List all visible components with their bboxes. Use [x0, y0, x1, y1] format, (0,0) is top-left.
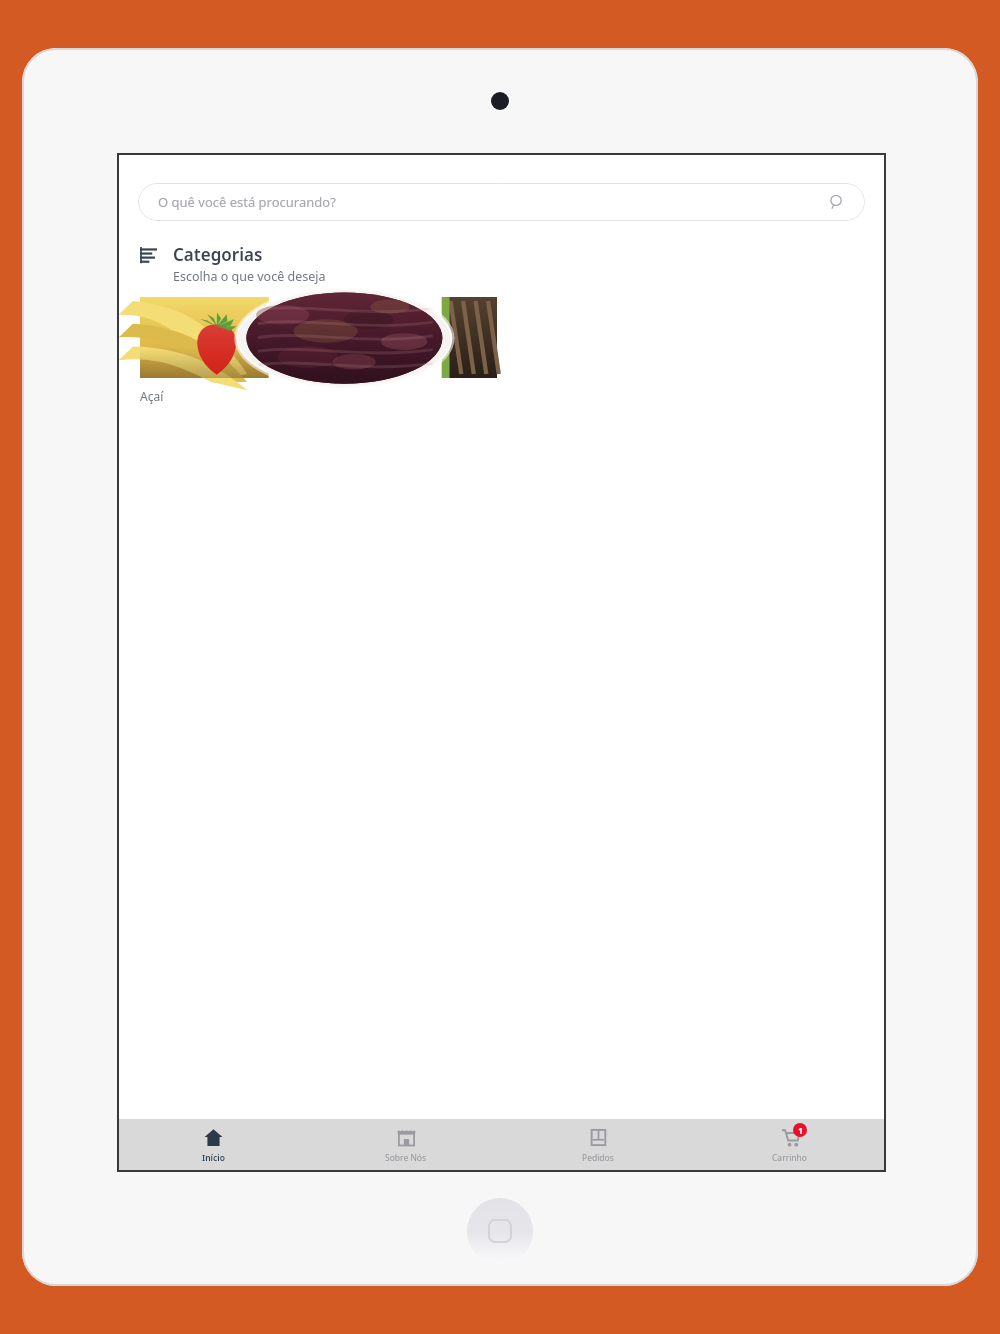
button[interactable]: Sobre Nós	[310, 1119, 502, 1172]
staticText: 1	[798, 1125, 803, 1136]
button[interactable]: Pedidos	[502, 1119, 694, 1172]
staticText: Escolha o que você deseja	[173, 268, 326, 285]
button[interactable]: Início	[117, 1119, 310, 1172]
staticText: Sobre Nós	[385, 1152, 427, 1164]
button[interactable]: Açaí	[140, 297, 497, 378]
button[interactable]: O quê você está procurando?	[138, 183, 865, 221]
button[interactable]: Carrinho	[694, 1119, 886, 1172]
staticText: Açaí	[140, 388, 164, 404]
staticText: Categorias	[173, 243, 263, 266]
staticText: Pedidos	[582, 1152, 614, 1164]
staticText: Início	[202, 1152, 225, 1164]
staticText: Carrinho	[772, 1152, 808, 1164]
staticText: O quê você está procurando?	[158, 193, 336, 211]
button[interactable]: Home	[467, 1198, 533, 1264]
